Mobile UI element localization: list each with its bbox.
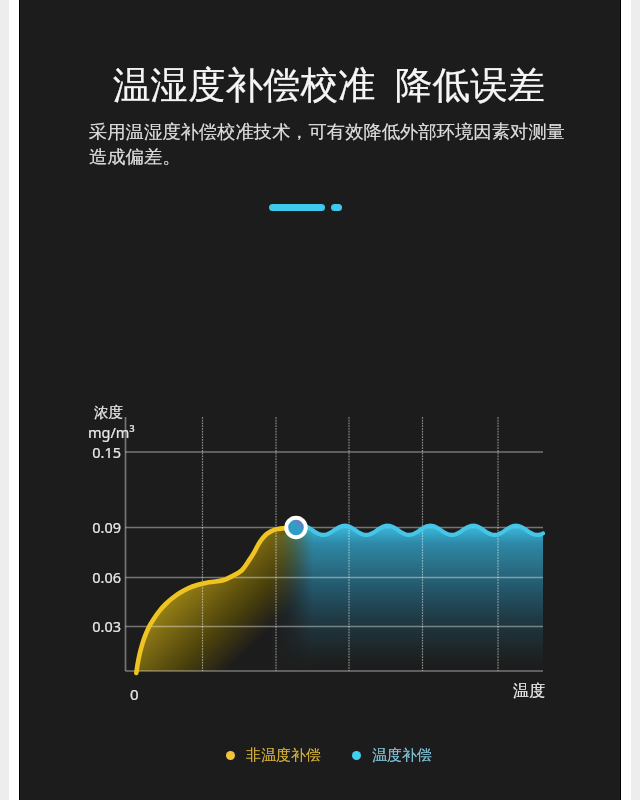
staticText: 温湿度补偿校准 降低误差: [9, 58, 640, 109]
staticText: 温度补偿: [372, 746, 432, 765]
staticText: 浓度: [94, 403, 123, 421]
staticText: 0.06: [61, 567, 121, 587]
button[interactable]: 非温度补偿: [226, 746, 321, 765]
staticText: 0.15: [61, 442, 121, 462]
staticText: 0.09: [61, 517, 121, 537]
staticText: 非温度补偿: [246, 746, 321, 765]
staticText: 0: [130, 684, 139, 704]
staticText: mg/m³: [88, 422, 135, 442]
staticText: 温度: [513, 681, 545, 701]
button[interactable]: Page 2: [331, 204, 342, 211]
button[interactable]: 温度补偿: [352, 746, 432, 765]
button[interactable]: Page 1: [269, 204, 325, 211]
staticText: 0.03: [61, 616, 121, 636]
staticText: 采用温湿度补偿校准技术，可有效降低外部环境因素对测量造成偏差。: [89, 120, 569, 168]
